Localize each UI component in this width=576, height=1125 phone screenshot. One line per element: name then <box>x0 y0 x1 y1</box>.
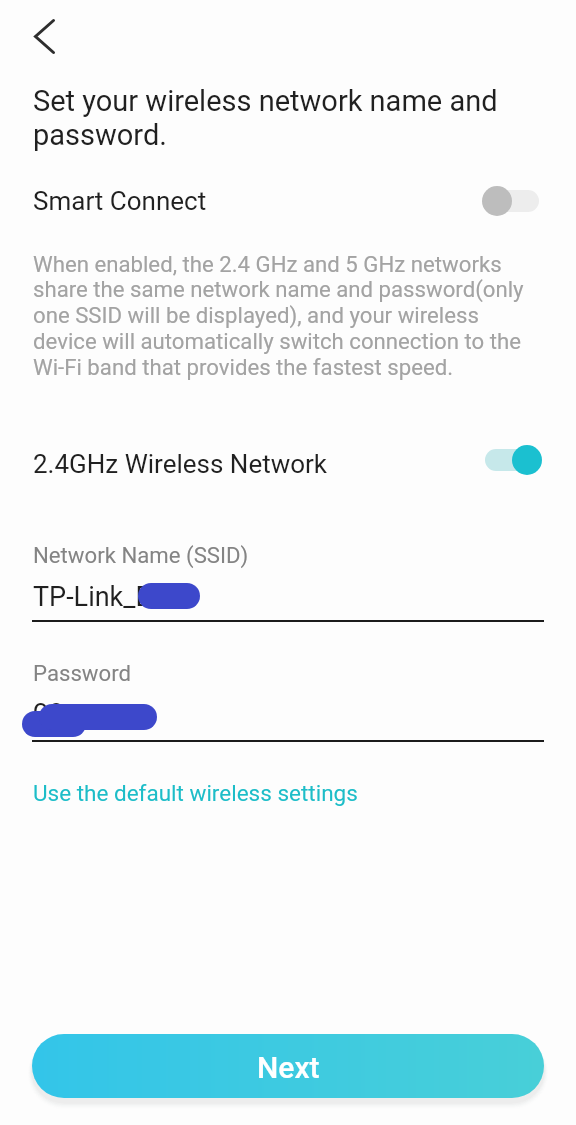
button[interactable]: 2.4GHz Wireless Network <box>0 438 576 486</box>
staticText: TP-Link_D8F3 <box>33 581 199 613</box>
button[interactable]: Use the default wireless settings <box>28 772 353 812</box>
button[interactable]: Network Name (SSID) <box>32 538 544 622</box>
button[interactable]: Back <box>12 4 76 68</box>
staticText: Network Name (SSID) <box>33 542 249 568</box>
staticText: Password <box>33 660 132 686</box>
button[interactable]: Smart Connect <box>0 177 576 225</box>
staticText: Smart Connect <box>33 186 207 216</box>
button[interactable]: Password <box>32 656 544 742</box>
staticText: oo <box>33 693 64 725</box>
staticText: Next <box>257 1050 320 1085</box>
staticText: 2.4GHz Wireless Network <box>33 449 328 479</box>
button[interactable]: Smart Connect off <box>482 185 542 217</box>
staticText: Set your wireless network name and passw… <box>33 84 513 152</box>
button[interactable]: 2.4GHz Wireless Network on <box>482 444 542 476</box>
staticText: When enabled, the 2.4 GHz and 5 GHz netw… <box>33 251 533 381</box>
button[interactable]: Next <box>32 1034 544 1098</box>
staticText: Use the default wireless settings <box>33 780 358 806</box>
